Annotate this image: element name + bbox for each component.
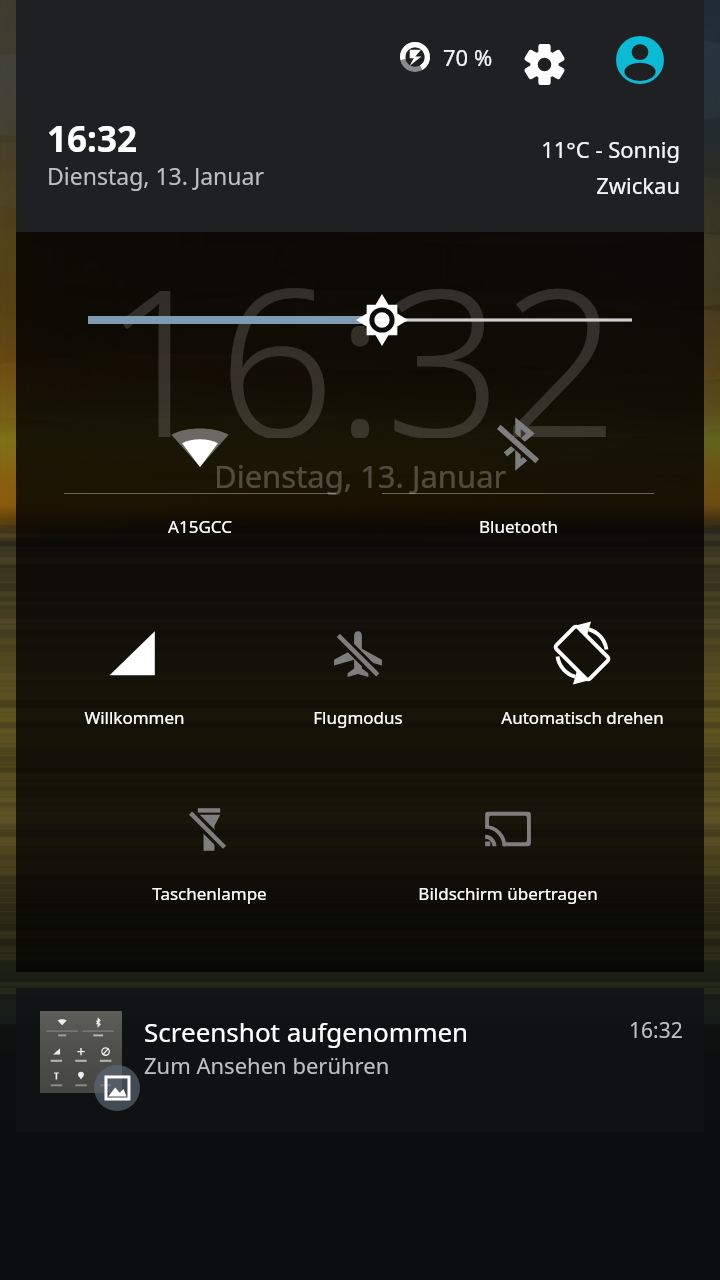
button[interactable]: Bildschirm übertragen bbox=[368, 789, 648, 916]
button[interactable]: Screenshot aufgenommen bbox=[16, 988, 704, 1132]
button[interactable]: Willkommen bbox=[0, 613, 274, 740]
staticText: Zum Ansehen berühren bbox=[144, 1050, 390, 1080]
button[interactable]: A15GCC bbox=[60, 404, 340, 549]
staticText: Automatisch drehen bbox=[501, 706, 664, 729]
staticText: Dienstag, 13. Januar bbox=[214, 455, 507, 497]
button[interactable]: Flugmodus bbox=[218, 613, 498, 740]
staticText: 11°C - Sonnig bbox=[541, 134, 680, 164]
button[interactable]: Taschenlampe bbox=[69, 789, 349, 916]
staticText: Dienstag, 13. Januar bbox=[47, 160, 264, 191]
staticText: A15GCC bbox=[168, 515, 232, 538]
button[interactable]: Battery 70 percent bbox=[394, 38, 499, 76]
staticText: 70 % bbox=[443, 42, 493, 72]
staticText: 16:32 bbox=[629, 1016, 683, 1045]
staticText: 16:32 bbox=[101, 218, 620, 438]
staticText: Screenshot aufgenommen bbox=[144, 1014, 469, 1049]
button[interactable]: Brightness bbox=[70, 282, 650, 358]
staticText: Bildschirm übertragen bbox=[418, 882, 598, 905]
button[interactable]: Bluetooth bbox=[378, 404, 658, 549]
staticText: Taschenlampe bbox=[152, 882, 267, 905]
staticText: Flugmodus bbox=[313, 706, 403, 729]
button[interactable]: Settings bbox=[514, 34, 574, 94]
staticText: Bluetooth bbox=[479, 515, 558, 538]
staticText: Zwickau bbox=[596, 170, 680, 200]
staticText: 16:32 bbox=[47, 115, 137, 163]
staticText: Willkommen bbox=[84, 706, 185, 729]
button[interactable]: User profile bbox=[616, 36, 664, 84]
button[interactable]: Automatisch drehen bbox=[442, 613, 720, 740]
